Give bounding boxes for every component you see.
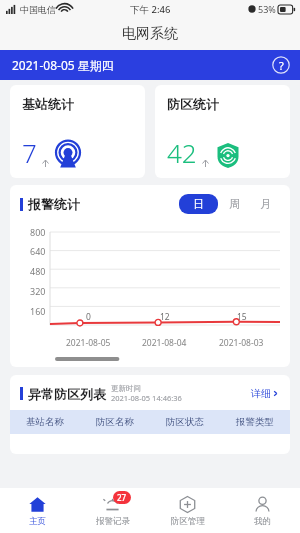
staticText: 防区名称 <box>96 416 134 428</box>
button[interactable]: 防区统计 <box>155 85 290 178</box>
button[interactable]: 日 <box>179 194 218 214</box>
staticText: 下午 2:46 <box>130 3 171 16</box>
staticText: 中国电信 <box>20 4 56 15</box>
staticText: 53% <box>258 3 276 15</box>
button[interactable]: 2021-08-05 星期四 <box>0 50 300 80</box>
staticText: 基站统计 <box>22 96 74 112</box>
staticText: 2021-08-05 <box>66 337 111 349</box>
staticText: 7 <box>22 135 37 170</box>
staticText: 报警统计 <box>28 196 80 212</box>
button[interactable]: 防区管理 <box>150 488 225 533</box>
staticText: 2021-08-05 星期四 <box>12 57 114 73</box>
staticText: 电网系统 <box>122 25 178 43</box>
staticText: 月 <box>260 197 271 211</box>
button[interactable]: 周 <box>218 194 251 214</box>
staticText: 800 <box>30 226 46 238</box>
staticText: 日 <box>193 197 204 211</box>
staticText: 报警类型 <box>236 416 274 428</box>
button[interactable]: 我的 <box>225 488 300 533</box>
staticText: 2021-08-05 14:46:36 <box>111 393 182 403</box>
staticText: 480 <box>30 265 46 277</box>
staticText: 320 <box>30 285 46 297</box>
staticText: 基站名称 <box>26 416 64 428</box>
button[interactable]: Help <box>272 56 290 74</box>
staticText: 42 <box>167 135 197 170</box>
staticText: 防区管理 <box>171 516 205 527</box>
button[interactable]: 详细 <box>251 387 280 400</box>
staticText: 更新时间 <box>111 384 141 393</box>
staticText: 27 <box>117 492 127 503</box>
staticText: 我的 <box>254 516 271 527</box>
staticText: ? <box>279 58 284 73</box>
staticText: 2021-08-04 <box>142 337 187 349</box>
staticText: 12 <box>160 311 170 323</box>
staticText: 异常防区列表 <box>28 386 106 402</box>
staticText: 0 <box>86 311 91 323</box>
staticText: 640 <box>30 245 46 257</box>
staticText: 160 <box>30 305 46 317</box>
staticText: 15 <box>237 311 247 323</box>
button[interactable]: 27 <box>75 488 150 533</box>
staticText: 周 <box>229 197 240 211</box>
staticText: 防区统计 <box>167 96 219 112</box>
staticText: 防区状态 <box>166 416 204 428</box>
staticText: 报警记录 <box>96 516 130 527</box>
button[interactable]: 基站统计 <box>10 85 145 178</box>
staticText: 2021-08-03 <box>219 337 264 349</box>
button[interactable]: 月 <box>251 194 280 214</box>
button[interactable]: 主页 <box>0 488 75 533</box>
staticText: 详细 <box>251 387 271 400</box>
staticText: 主页 <box>29 516 46 527</box>
